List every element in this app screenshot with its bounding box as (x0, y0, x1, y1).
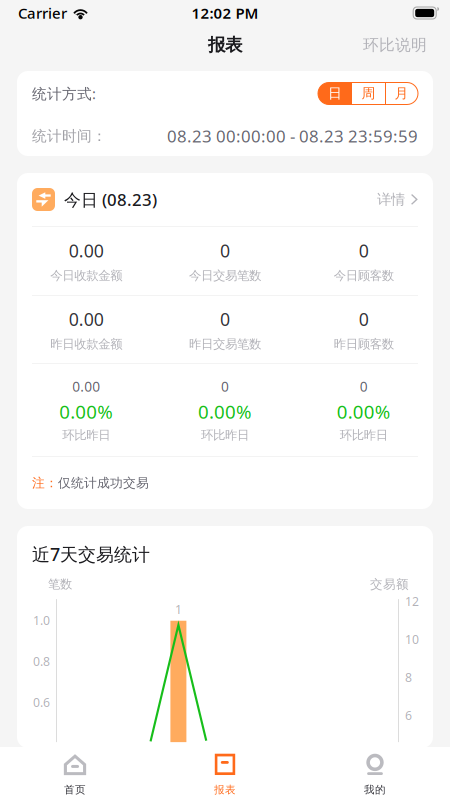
staticText: 我的 (364, 783, 386, 796)
staticText: 近7天交易统计 (32, 542, 150, 566)
staticText: 环比昨日 (62, 427, 110, 443)
staticText: 日 (328, 85, 342, 102)
staticText: 0.00 (69, 239, 104, 263)
staticText: 昨日交易笔数 (189, 336, 261, 352)
staticText: 月 (394, 85, 408, 102)
staticText: 0 (221, 377, 229, 396)
staticText: 环比昨日 (340, 427, 388, 443)
staticText: 交易额 (370, 576, 409, 592)
staticText: 0.00 (69, 307, 104, 331)
staticText: 注： (32, 475, 58, 491)
staticText: 12 (405, 593, 419, 609)
button[interactable]: 环比说明 (363, 26, 450, 64)
staticText: 详情 (377, 190, 405, 208)
staticText: 统计方式: (32, 83, 96, 103)
button[interactable]: 我的 (300, 747, 450, 800)
staticText: 昨日顾客数 (334, 336, 394, 352)
staticText: 今日 (08.23) (64, 188, 157, 211)
button[interactable]: 月 (385, 82, 418, 104)
staticText: 统计时间： (32, 127, 107, 145)
staticText: 6 (405, 707, 412, 723)
button[interactable]: 详情 (377, 182, 418, 216)
staticText: 报表 (214, 783, 236, 796)
staticText: 今日收款金额 (50, 268, 122, 283)
staticText: 环比说明 (363, 35, 427, 55)
staticText: 报表 (208, 34, 242, 56)
staticText: 0.00% (198, 399, 252, 424)
staticText: 1 (175, 601, 182, 617)
staticText: 昨日收款金额 (50, 336, 122, 352)
staticText: 今日交易笔数 (189, 268, 261, 283)
staticText: 今日顾客数 (334, 268, 394, 283)
staticText: 0 (360, 377, 368, 396)
staticText: 08.23 00:00:00 - 08.23 23:59:59 (167, 125, 418, 147)
staticText: 首页 (64, 783, 86, 796)
button[interactable]: 首页 (0, 747, 150, 800)
staticText: 1.0 (33, 612, 50, 628)
staticText: 10 (405, 631, 419, 647)
staticText: 0.00 (72, 377, 100, 396)
staticText: 环比昨日 (201, 427, 249, 443)
staticText: 笔数 (48, 576, 72, 592)
staticText: 0.6 (33, 694, 50, 710)
button[interactable]: 周 (352, 82, 385, 104)
staticText: 0 (220, 307, 230, 331)
staticText: 仅统计成功交易 (58, 475, 149, 491)
staticText: 0 (359, 239, 369, 263)
staticText: 12:02 PM (191, 3, 258, 23)
staticText: 8 (405, 669, 412, 685)
staticText: 0.8 (33, 653, 50, 669)
staticText: 0.00% (337, 399, 391, 424)
staticText: Carrier (18, 3, 67, 23)
staticText: 0 (220, 239, 230, 263)
button[interactable]: 日 (318, 82, 352, 104)
button[interactable]: 报表 (150, 747, 300, 800)
staticText: 周 (361, 85, 375, 102)
staticText: 0 (359, 307, 369, 331)
staticText: 0.00% (59, 399, 113, 424)
